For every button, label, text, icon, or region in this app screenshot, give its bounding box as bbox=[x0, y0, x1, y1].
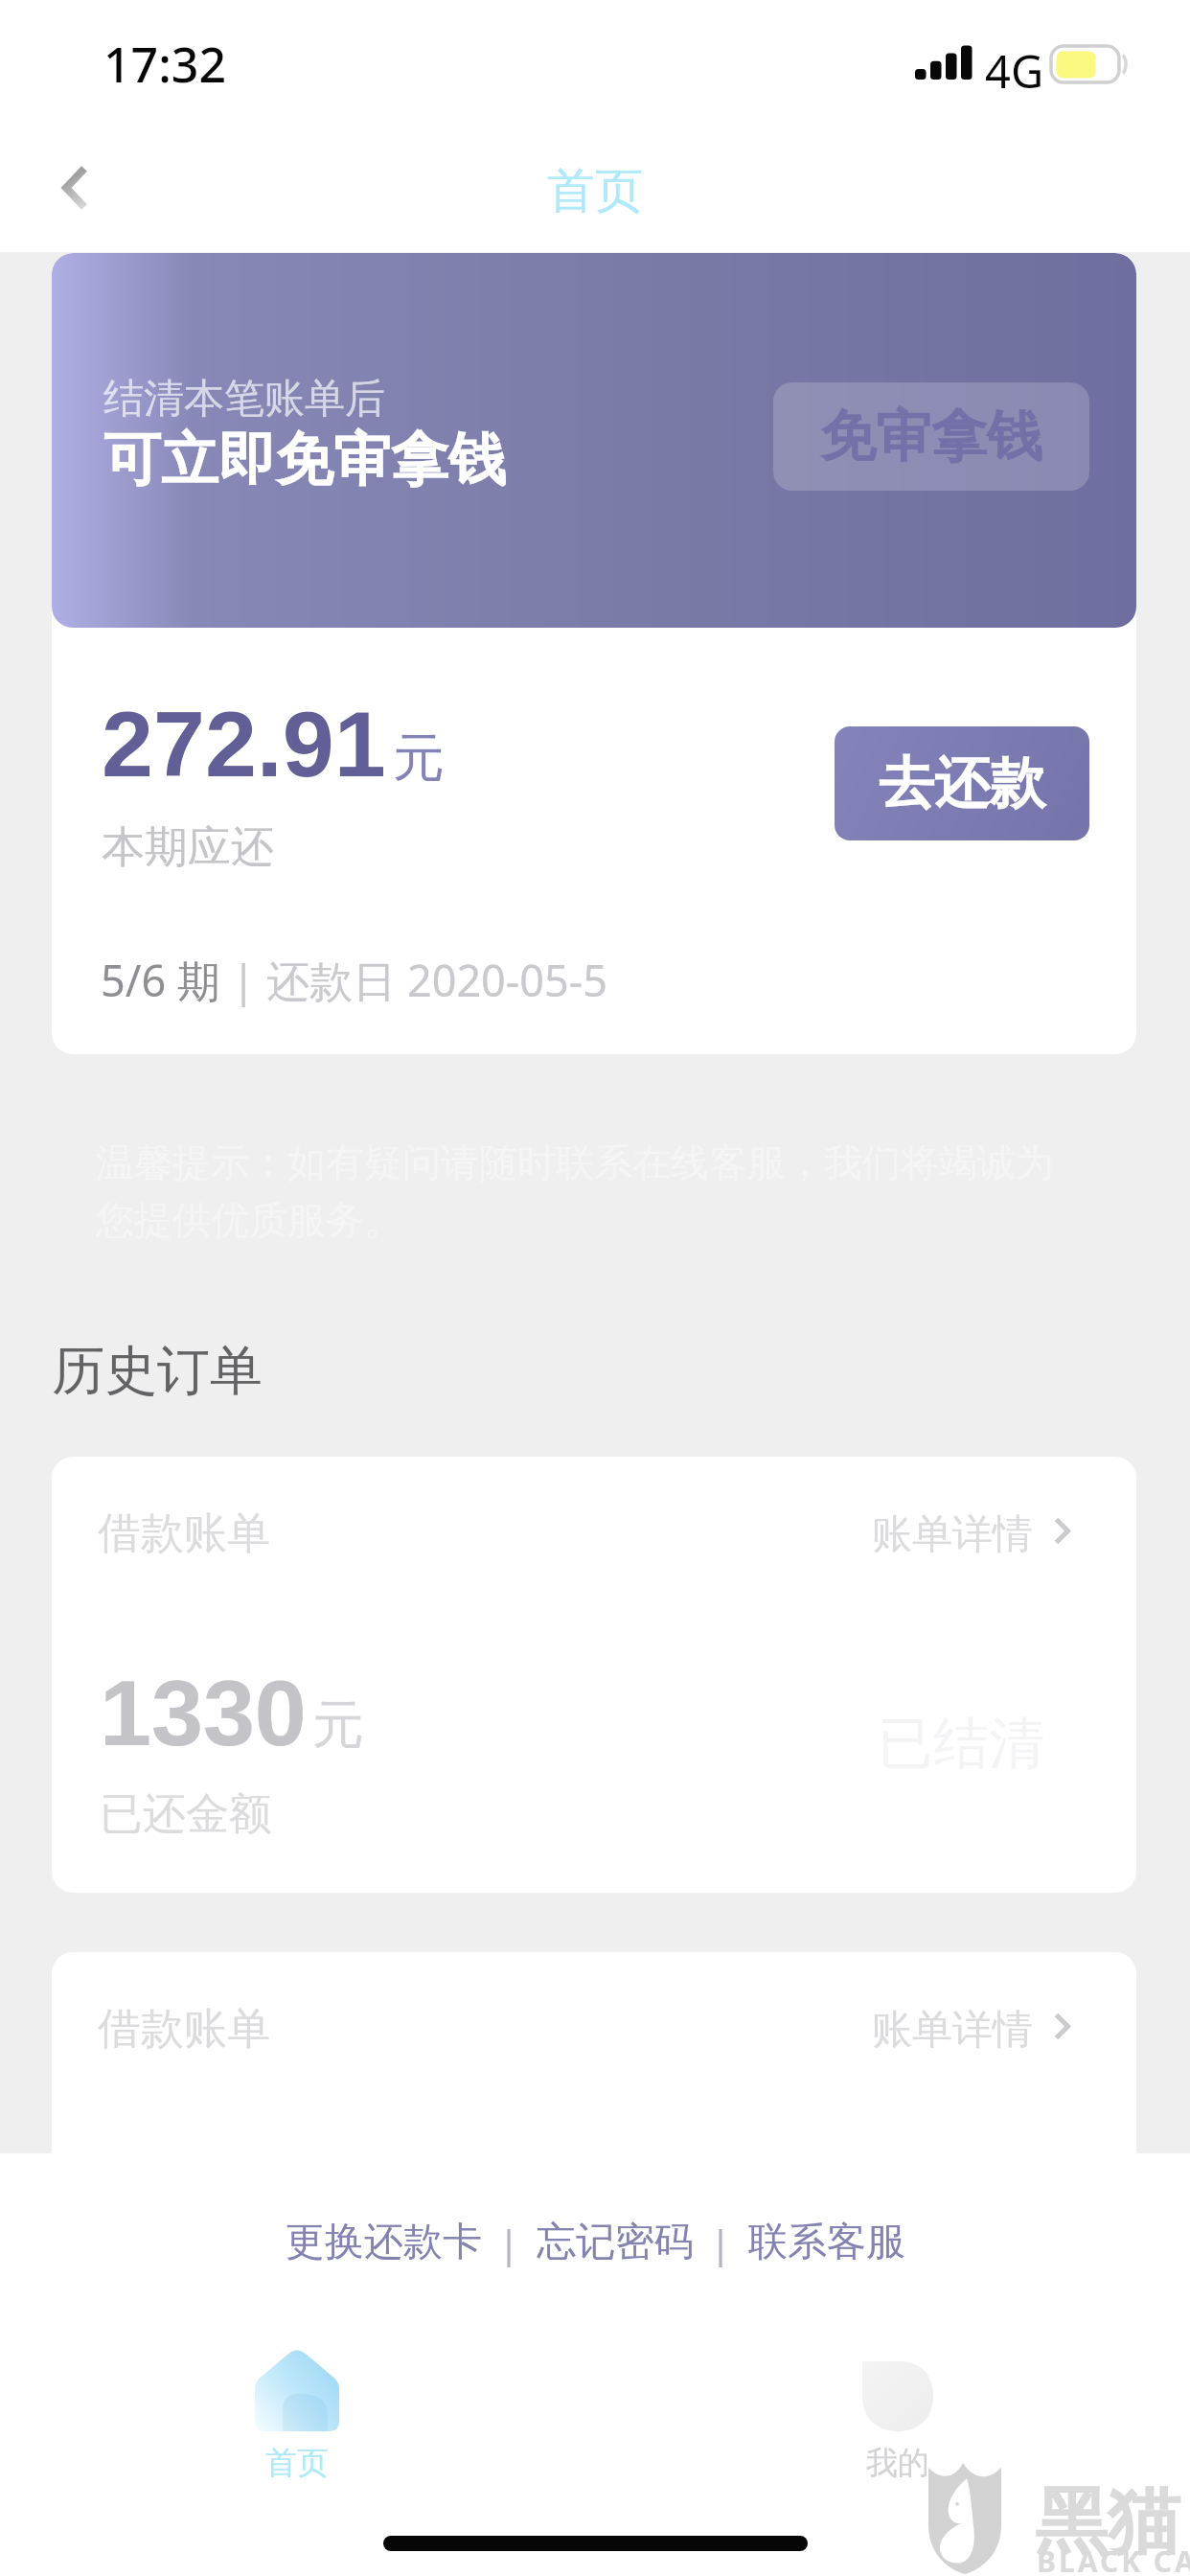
staticText: 已还金额 bbox=[100, 1787, 272, 1842]
staticText: 17:32 bbox=[103, 32, 226, 97]
staticText: | bbox=[498, 2217, 520, 2268]
staticText: 我的 bbox=[866, 2443, 929, 2483]
staticText: 黑猫 bbox=[1035, 2476, 1180, 2568]
button[interactable]: 去还款 bbox=[835, 726, 1089, 840]
staticText: 借款账单 bbox=[98, 1506, 270, 1561]
staticText: 首页 bbox=[547, 161, 643, 221]
button[interactable]: 我的 bbox=[802, 2332, 994, 2499]
staticText: 免审拿钱 bbox=[820, 402, 1042, 471]
staticText: 借款账单 bbox=[98, 2002, 270, 2057]
staticText: | 还款日 2020-05-5 bbox=[220, 951, 608, 1009]
staticText: 结清本笔账单后 bbox=[103, 374, 385, 425]
button[interactable]: 首页 bbox=[201, 2332, 393, 2499]
button[interactable]: 联系客服 bbox=[744, 2200, 909, 2285]
staticText: 1330 bbox=[100, 1661, 307, 1764]
staticText: 已结清 bbox=[878, 1709, 1044, 1779]
staticText: 忘记密码 bbox=[537, 2218, 694, 2267]
staticText: 联系客服 bbox=[748, 2218, 905, 2267]
button[interactable]: Back bbox=[36, 149, 113, 226]
staticText: 272.91 bbox=[102, 692, 386, 795]
staticText: 去还款 bbox=[879, 748, 1045, 818]
staticText: 账单详情 bbox=[872, 1509, 1033, 1560]
staticText: | bbox=[710, 2217, 732, 2268]
staticText: 5/6 期 bbox=[101, 951, 220, 1009]
staticText: 账单详情 bbox=[872, 2005, 1033, 2056]
button[interactable]: 更换还款卡 bbox=[282, 2200, 486, 2285]
staticText: BLACK CAT bbox=[1037, 2541, 1190, 2576]
staticText: 历史订单 bbox=[52, 1338, 263, 1404]
staticText: 更换还款卡 bbox=[286, 2218, 482, 2267]
button[interactable]: 借款账单 bbox=[52, 1952, 1136, 2259]
staticText: 本期应还 bbox=[102, 820, 274, 875]
staticText: 元 bbox=[393, 725, 445, 791]
button[interactable]: 忘记密码 bbox=[533, 2200, 698, 2285]
button[interactable]: 免审拿钱 bbox=[773, 382, 1089, 491]
staticText: 可立即免审拿钱 bbox=[103, 424, 506, 496]
staticText: 首页 bbox=[265, 2443, 329, 2483]
staticText: 元 bbox=[312, 1692, 364, 1758]
button[interactable]: 借款账单 bbox=[52, 1457, 1136, 1893]
button[interactable]: 结清本笔账单后 bbox=[52, 253, 1136, 628]
staticText: 4G bbox=[985, 40, 1044, 102]
